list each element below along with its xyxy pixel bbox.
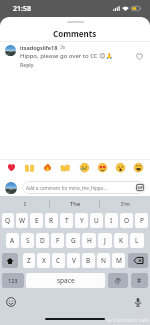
button[interactable]: R bbox=[45, 213, 58, 228]
staticText: K bbox=[119, 236, 124, 245]
button[interactable]: At sign bbox=[108, 273, 128, 288]
button[interactable]: U bbox=[90, 213, 103, 228]
button[interactable]: GIF bbox=[135, 183, 144, 192]
button[interactable]: Numbers bbox=[2, 273, 24, 288]
button[interactable]: Y bbox=[75, 213, 88, 228]
button[interactable]: space bbox=[26, 273, 105, 288]
staticText: U bbox=[94, 216, 99, 225]
button[interactable]: W bbox=[16, 213, 28, 228]
staticText: 123 bbox=[8, 277, 18, 284]
staticText: T bbox=[65, 216, 69, 225]
button[interactable]: H bbox=[82, 233, 96, 248]
staticText: A bbox=[10, 236, 15, 245]
staticText: W bbox=[19, 216, 26, 225]
staticText: Reply bbox=[20, 62, 34, 69]
staticText: Y bbox=[80, 216, 84, 225]
button[interactable]: J bbox=[98, 233, 112, 248]
staticText: O bbox=[124, 216, 130, 225]
button[interactable]: M bbox=[112, 253, 125, 268]
button[interactable]: T bbox=[60, 213, 73, 228]
staticText: Add a comment for mine_the_hippo... bbox=[26, 185, 135, 191]
staticText: X bbox=[42, 256, 46, 265]
button[interactable]: Fire bbox=[40, 160, 55, 175]
button[interactable]: E bbox=[30, 213, 43, 228]
button[interactable]: I bbox=[0, 196, 50, 211]
staticText: space bbox=[57, 276, 75, 285]
staticText: M bbox=[116, 256, 122, 265]
button[interactable]: S bbox=[21, 233, 34, 248]
staticText: R bbox=[49, 216, 54, 225]
staticText: F bbox=[56, 236, 60, 245]
button[interactable]: Heart eyes bbox=[95, 160, 110, 175]
button[interactable]: A bbox=[6, 233, 19, 248]
staticText: I bbox=[24, 200, 27, 208]
staticText: I bbox=[110, 216, 113, 225]
button[interactable]: Q bbox=[2, 213, 14, 228]
staticText: E bbox=[35, 216, 39, 225]
staticText: 3s bbox=[60, 44, 66, 51]
button[interactable]: N bbox=[97, 253, 110, 268]
staticText: G bbox=[71, 236, 76, 245]
staticText: Comments bbox=[53, 28, 97, 39]
button[interactable]: C bbox=[52, 253, 65, 268]
button[interactable]: V bbox=[67, 253, 80, 268]
button[interactable]: Like bbox=[132, 49, 146, 63]
button[interactable]: K bbox=[114, 233, 128, 248]
button[interactable]: Clap bbox=[58, 160, 73, 175]
staticText: D bbox=[40, 236, 45, 245]
staticText: S bbox=[26, 236, 30, 245]
button[interactable]: D bbox=[36, 233, 49, 248]
staticText: P bbox=[140, 216, 144, 225]
button[interactable]: O bbox=[120, 213, 133, 228]
button[interactable]: Surprised bbox=[113, 160, 128, 175]
staticText: I'm bbox=[121, 200, 130, 208]
button[interactable]: I'm bbox=[100, 196, 150, 211]
button[interactable]: B bbox=[82, 253, 95, 268]
button[interactable]: Z bbox=[23, 253, 35, 268]
button[interactable]: G bbox=[66, 233, 80, 248]
button[interactable]: Backspace bbox=[128, 253, 148, 268]
staticText: # bbox=[137, 276, 142, 285]
button[interactable]: L bbox=[130, 233, 144, 248]
staticText: Q bbox=[5, 216, 11, 225]
button[interactable]: Shift bbox=[2, 253, 18, 268]
staticText: J bbox=[104, 236, 106, 245]
button[interactable]: Dictation bbox=[133, 297, 143, 307]
staticText: 21:58 bbox=[13, 4, 31, 14]
button[interactable]: Hash bbox=[131, 273, 148, 288]
staticText: itsadogslife18 bbox=[20, 44, 58, 51]
button[interactable]: X bbox=[37, 253, 50, 268]
staticText: ▸▸ Comment cafe bbox=[107, 317, 149, 324]
button[interactable]: The bbox=[50, 196, 100, 211]
staticText: Z bbox=[27, 256, 31, 265]
button[interactable]: itsadogslife18 bbox=[0, 44, 150, 69]
staticText: @ bbox=[115, 276, 121, 285]
button[interactable]: Crying face bbox=[77, 160, 92, 175]
button[interactable]: Add a comment for mine_the_hippo... bbox=[22, 181, 146, 194]
button[interactable]: Raised hands bbox=[22, 160, 37, 175]
button[interactable]: F bbox=[51, 233, 64, 248]
staticText: L bbox=[135, 236, 139, 245]
staticText: V bbox=[72, 256, 76, 265]
button[interactable]: I bbox=[105, 213, 118, 228]
staticText: H bbox=[87, 236, 92, 245]
staticText: N bbox=[101, 256, 106, 265]
button[interactable]: P bbox=[135, 213, 148, 228]
button[interactable]: Emoji keyboard bbox=[6, 297, 16, 307]
staticText: C bbox=[56, 256, 61, 265]
button[interactable]: Heart bbox=[4, 160, 19, 175]
button[interactable]: Laughing bbox=[131, 160, 146, 175]
staticText: B bbox=[86, 256, 91, 265]
staticText: The bbox=[70, 200, 81, 208]
staticText: Hippo, please go over to CC 😊🙏 bbox=[20, 52, 113, 60]
